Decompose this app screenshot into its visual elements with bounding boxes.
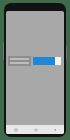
button[interactable]: Home bbox=[26, 125, 45, 134]
button[interactable]: Label bbox=[8, 56, 31, 66]
button[interactable]: Recents bbox=[6, 125, 26, 134]
button[interactable]: Progress bbox=[33, 57, 61, 65]
button[interactable]: Back bbox=[45, 125, 64, 134]
